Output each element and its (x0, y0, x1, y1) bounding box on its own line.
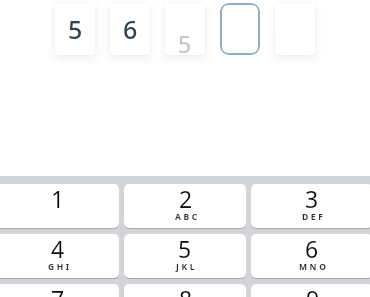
staticText: JKL (176, 261, 198, 273)
button[interactable]: 4 (0, 234, 119, 279)
staticText: DEF (302, 211, 326, 223)
staticText: 3 (305, 184, 319, 214)
staticText: GHI (48, 261, 72, 273)
button[interactable]: 3 (251, 184, 370, 229)
button[interactable]: 2 (124, 184, 246, 229)
button[interactable]: 8 (124, 284, 246, 297)
staticText: MNO (299, 261, 329, 273)
staticText: ABC (175, 211, 200, 223)
staticText: 6 (123, 12, 138, 46)
staticText: 9 (306, 284, 320, 297)
staticText: 7 (51, 284, 65, 297)
button[interactable] (220, 3, 260, 55)
staticText: 2 (179, 184, 193, 214)
staticText: 5 (178, 28, 192, 55)
staticText: 1 (51, 184, 65, 214)
staticText: 4 (51, 234, 65, 264)
button[interactable]: 6 (251, 234, 370, 279)
button[interactable]: 1 (0, 184, 119, 229)
staticText: 5 (68, 12, 83, 46)
button[interactable]: 9 (251, 284, 370, 297)
button[interactable]: 7 (0, 284, 119, 297)
staticText: 5 (178, 234, 192, 264)
staticText: 6 (305, 234, 319, 264)
button[interactable]: 5 (55, 3, 95, 55)
button[interactable]: 5 (165, 3, 205, 55)
staticText: 8 (179, 284, 193, 297)
button[interactable]: 6 (110, 3, 150, 55)
button[interactable]: 5 (124, 234, 246, 279)
